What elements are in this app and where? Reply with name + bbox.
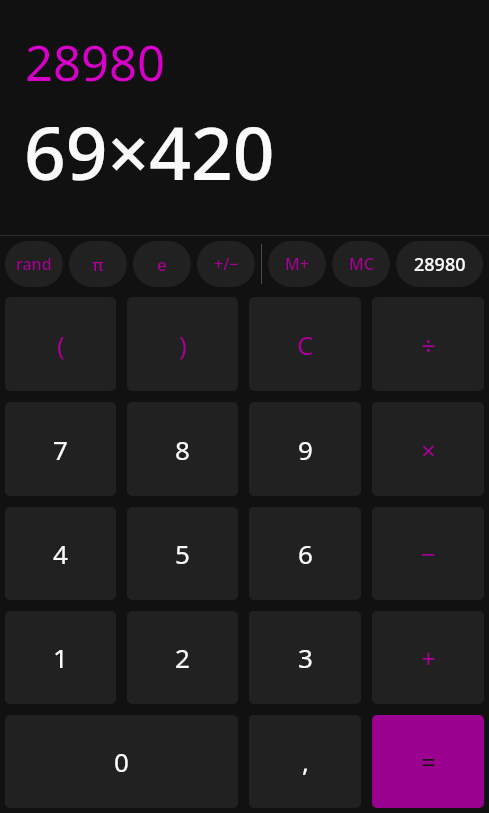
staticText: M+ — [285, 253, 309, 275]
button[interactable]: Four — [5, 507, 116, 600]
staticText: 0 — [114, 744, 129, 779]
staticText: 2 — [175, 640, 190, 675]
staticText: π — [92, 253, 104, 276]
button[interactable]: Open bracket — [5, 297, 116, 391]
button[interactable]: Zero — [5, 715, 238, 808]
button[interactable]: Clear — [249, 297, 361, 391]
button[interactable]: Three — [249, 611, 361, 704]
button[interactable]: Pi — [69, 241, 127, 287]
staticText: 28980 — [414, 252, 466, 277]
staticText: + — [421, 640, 436, 675]
button[interactable]: Close bracket — [127, 297, 238, 391]
staticText: 8 — [175, 432, 190, 467]
staticText: , — [302, 744, 309, 779]
staticText: 4 — [53, 536, 68, 571]
staticText: 1 — [53, 640, 68, 675]
button[interactable]: Two — [127, 611, 238, 704]
staticText: e — [157, 253, 167, 276]
button[interactable]: Memory value 28980 — [396, 241, 483, 287]
button[interactable]: 28980 — [0, 0, 489, 235]
button[interactable]: Nine — [249, 402, 361, 496]
button[interactable]: Eight — [127, 402, 238, 496]
staticText: 7 — [53, 432, 68, 467]
staticText: ) — [179, 327, 187, 362]
staticText: = — [421, 744, 436, 779]
staticText: rand — [16, 253, 52, 275]
staticText: 9 — [298, 432, 313, 467]
staticText: ( — [57, 327, 65, 362]
button[interactable]: Memory clear — [332, 241, 390, 287]
staticText: 6 — [298, 536, 313, 571]
staticText: C — [297, 327, 314, 362]
button[interactable]: Minus — [372, 507, 484, 600]
button[interactable]: Seven — [5, 402, 116, 496]
button[interactable]: Random number — [5, 241, 63, 287]
button[interactable]: Six — [249, 507, 361, 600]
button[interactable]: One — [5, 611, 116, 704]
staticText: × — [421, 432, 436, 467]
staticText: ÷ — [421, 327, 436, 362]
button[interactable]: Multiply — [372, 402, 484, 496]
button[interactable]: Plus — [372, 611, 484, 704]
button[interactable]: Euler's number — [133, 241, 191, 287]
staticText: MC — [349, 253, 374, 275]
staticText: 5 — [175, 536, 190, 571]
button[interactable]: Divide — [372, 297, 484, 391]
button[interactable]: Five — [127, 507, 238, 600]
staticText: +/− — [214, 253, 239, 275]
staticText: 3 — [298, 640, 313, 675]
staticText: 69×420 — [24, 102, 275, 201]
button[interactable]: Decimal separator — [249, 715, 361, 808]
button[interactable]: Equals — [372, 715, 484, 808]
button[interactable]: Memory add — [268, 241, 326, 287]
staticText: − — [421, 536, 436, 571]
button[interactable]: Toggle sign — [197, 241, 255, 287]
staticText: 28980 — [25, 29, 166, 96]
